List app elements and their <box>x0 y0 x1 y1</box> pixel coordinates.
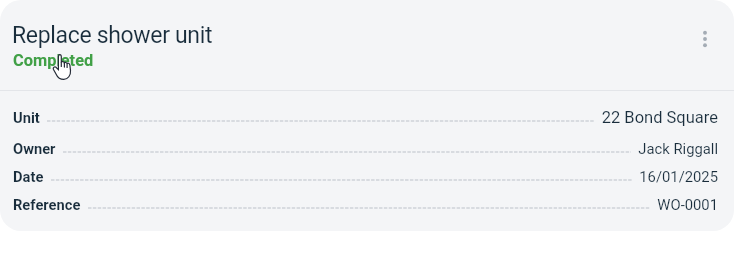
staticText: Replace shower unit <box>12 22 213 49</box>
staticText: Owner <box>13 140 56 157</box>
button[interactable]: Unit <box>0 100 734 134</box>
staticText: Completed <box>13 51 94 70</box>
staticText: Unit <box>13 109 40 126</box>
button[interactable]: Replace shower unit <box>12 22 213 49</box>
staticText: 22 Bond Square <box>601 108 718 127</box>
button[interactable]: Completed <box>13 51 94 70</box>
staticText: 16/01/2025 <box>639 168 718 185</box>
button[interactable]: Date <box>0 162 734 190</box>
staticText: Reference <box>13 196 81 213</box>
staticText: Jack Riggall <box>638 140 718 157</box>
staticText: Date <box>13 168 44 185</box>
staticText: WO-0001 <box>657 196 718 213</box>
button[interactable]: More options <box>687 19 723 59</box>
button[interactable]: Owner <box>0 134 734 162</box>
button[interactable]: Reference <box>0 190 734 218</box>
